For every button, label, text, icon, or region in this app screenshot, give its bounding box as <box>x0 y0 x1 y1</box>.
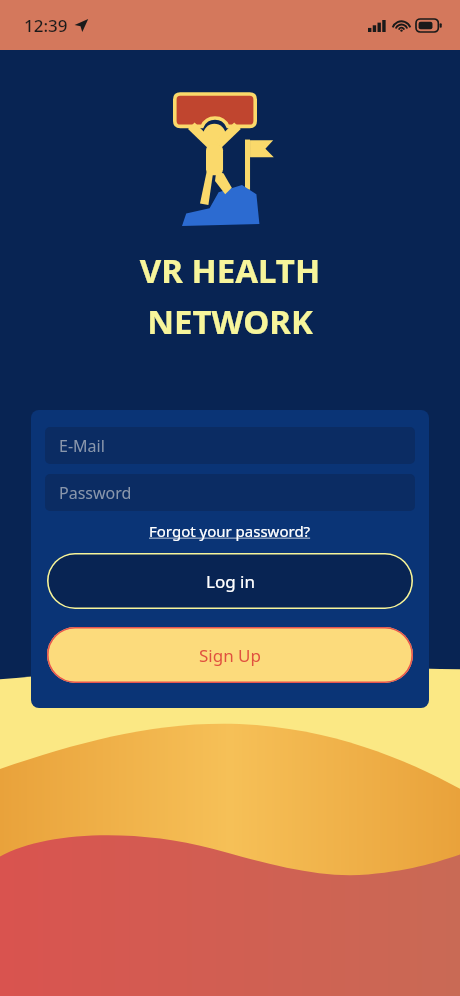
button[interactable]: Password <box>45 474 415 511</box>
staticText: Sign Up <box>199 644 261 667</box>
button[interactable]: Log in <box>47 553 413 609</box>
button[interactable]: Forgot your password? <box>145 517 315 545</box>
staticText: Forgot your password? <box>149 521 311 541</box>
button[interactable]: E-Mail <box>45 427 415 464</box>
staticText: E-Mail <box>59 435 105 457</box>
staticText: Password <box>59 482 132 504</box>
staticText: 12:39 <box>24 14 68 37</box>
staticText: NETWORK <box>0 299 460 344</box>
staticText: VR HEALTH <box>0 248 460 293</box>
button[interactable]: Sign Up <box>47 627 413 683</box>
staticText: Log in <box>206 570 255 593</box>
